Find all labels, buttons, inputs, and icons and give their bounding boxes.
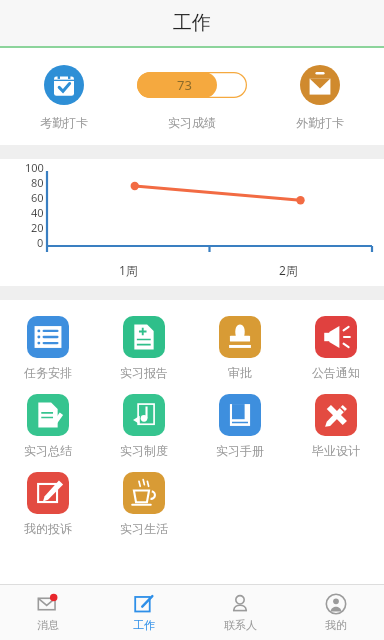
staticText: 实习总结 xyxy=(24,443,72,458)
other: 我的 xyxy=(325,593,347,615)
staticText: 公告通知 xyxy=(312,365,360,380)
button[interactable]: 考勤打卡 xyxy=(0,48,128,145)
staticText: 60 xyxy=(31,190,44,205)
button[interactable]: 消息 xyxy=(0,585,96,640)
staticText: 审批 xyxy=(228,365,252,380)
staticText: 20 xyxy=(31,220,44,235)
staticText: 考勤打卡 xyxy=(40,115,88,130)
staticText: 40 xyxy=(31,205,44,220)
button[interactable]: 审批 xyxy=(192,316,288,380)
staticText: 毕业设计 xyxy=(312,443,360,458)
staticText: 73 xyxy=(177,76,192,94)
staticText: 100 xyxy=(25,160,44,175)
button[interactable]: 工作 xyxy=(96,585,192,640)
button[interactable]: 毕业设计 xyxy=(288,394,384,458)
button[interactable]: 实习手册 xyxy=(192,394,288,458)
button[interactable]: 任务安排 xyxy=(0,316,96,380)
staticText: 实习手册 xyxy=(216,443,264,458)
staticText: 消息 xyxy=(37,618,59,632)
staticText: 实习制度 xyxy=(120,443,168,458)
staticText: 工作 xyxy=(133,618,155,632)
other: 联系人 xyxy=(229,593,251,615)
button[interactable]: 实习总结 xyxy=(0,394,96,458)
staticText: 实习成绩 xyxy=(168,115,216,130)
staticText: 80 xyxy=(31,175,44,190)
button[interactable]: 公告通知 xyxy=(288,316,384,380)
staticText: 外勤打卡 xyxy=(296,115,344,130)
button[interactable]: 实习生活 xyxy=(96,472,192,536)
button[interactable]: 73 xyxy=(128,48,256,145)
staticText: 任务安排 xyxy=(24,365,72,380)
staticText: 联系人 xyxy=(224,618,257,632)
other: 工作 xyxy=(133,593,155,615)
button[interactable]: 实习报告 xyxy=(96,316,192,380)
button[interactable]: 我的投诉 xyxy=(0,472,96,536)
staticText: 我的 xyxy=(325,618,347,632)
button[interactable]: 我的 xyxy=(288,585,384,640)
staticText: 实习生活 xyxy=(120,521,168,536)
button[interactable]: 外勤打卡 xyxy=(256,48,384,145)
staticText: 我的投诉 xyxy=(24,521,72,536)
staticText: 实习报告 xyxy=(120,365,168,380)
other: 消息 xyxy=(37,593,59,615)
staticText: 工作 xyxy=(173,11,211,35)
staticText: 0 xyxy=(37,235,44,247)
button[interactable]: 实习制度 xyxy=(96,394,192,458)
staticText: 1周 xyxy=(119,262,138,278)
staticText: 2周 xyxy=(279,262,298,278)
button[interactable]: 联系人 xyxy=(192,585,288,640)
